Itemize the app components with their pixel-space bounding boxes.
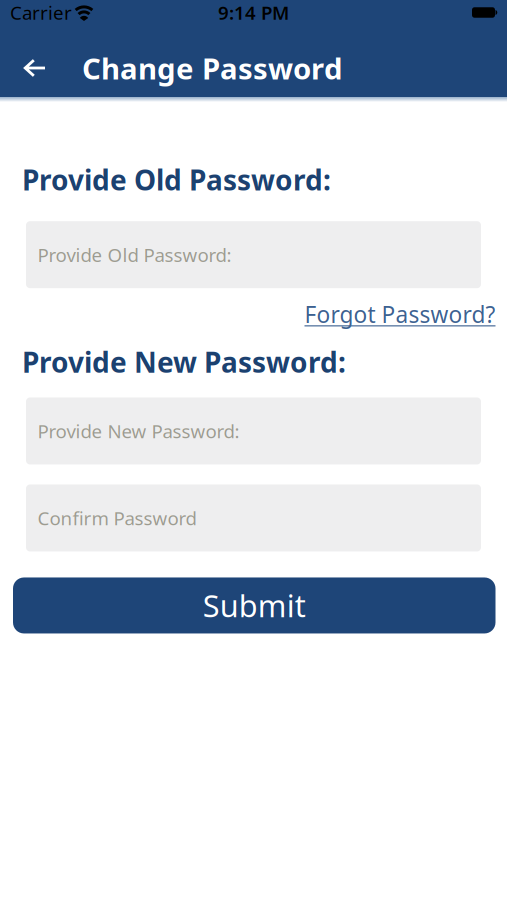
staticText: Submit [203,585,306,626]
textField[interactable]: Provide New Password: [37,419,255,443]
button[interactable]: Submit [13,577,495,633]
staticText: Provide New Password: [22,343,346,380]
button[interactable]: Back [0,59,54,77]
textField[interactable]: Provide Old Password: [37,242,255,267]
staticText: Carrier [10,0,72,25]
staticText: Forgot Password? [304,299,495,329]
staticText: 9:14 PM [218,0,289,25]
textField[interactable]: Confirm Password [37,506,255,530]
button[interactable]: Forgot Password? [304,299,495,329]
staticText: Provide New Password: [37,419,239,443]
staticText: Provide Old Password: [22,161,331,198]
staticText: Provide Old Password: [37,242,231,267]
staticText: Confirm Password [37,506,196,530]
staticText: Change Password [82,48,343,87]
